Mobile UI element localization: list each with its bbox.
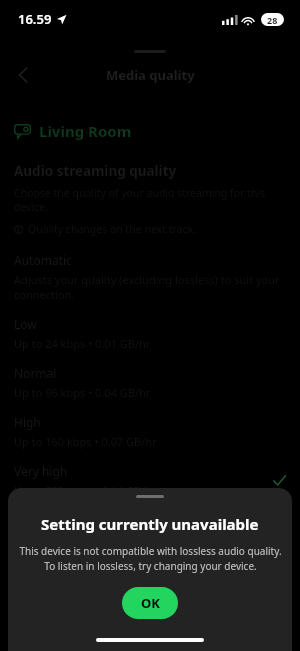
button[interactable]: OK — [122, 587, 178, 619]
staticText: Lossless — [14, 512, 61, 528]
staticText: Automatic — [14, 252, 72, 268]
staticText: High — [14, 414, 41, 430]
button[interactable]: Automatic — [14, 252, 286, 302]
staticText: Normal — [14, 365, 57, 381]
staticText: Up to 320 kbps • 0.14 GB/hr — [14, 483, 157, 498]
staticText: Living Room — [39, 121, 132, 141]
staticText: Up to 96 kbps • 0.04 GB/hr — [14, 385, 151, 400]
staticText: Low — [14, 316, 37, 332]
staticText: Audio streaming quality — [14, 162, 177, 180]
button[interactable]: Back — [6, 57, 42, 93]
staticText: Media quality — [106, 66, 195, 84]
staticText: Very high — [14, 463, 68, 479]
staticText: OK — [141, 594, 160, 612]
staticText: Choose the quality of your audio streami… — [14, 186, 286, 214]
staticText: Setting currently unavailable — [41, 514, 259, 534]
staticText: Up to 160 kbps • 0.07 GB/hr — [14, 434, 157, 449]
staticText: 28 — [267, 14, 278, 26]
staticText: Quality changes on the next track. — [28, 222, 196, 236]
button[interactable]: Living Room — [14, 121, 286, 141]
staticText: Adjusts your quality (excluding lossless… — [14, 272, 280, 302]
staticText: This device is not compatible with lossl… — [19, 544, 282, 573]
button[interactable]: Very high — [14, 463, 286, 498]
staticText: Up to 24 kbps • 0.01 GB/hr — [14, 336, 151, 351]
staticText: 16.59 — [18, 10, 52, 28]
